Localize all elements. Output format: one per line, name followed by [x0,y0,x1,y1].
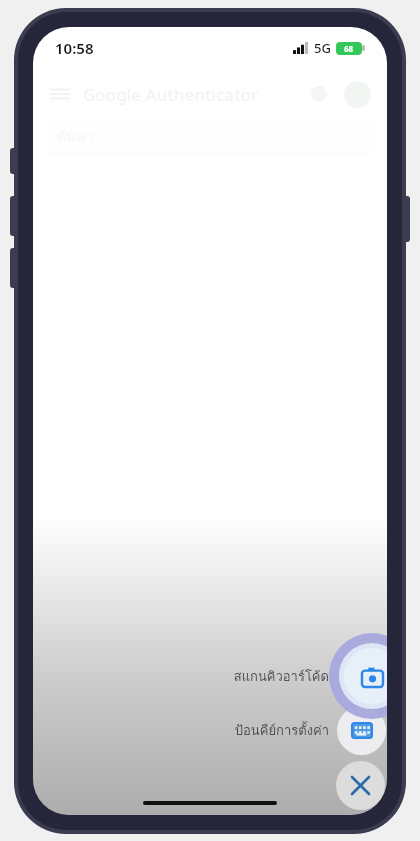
button[interactable]: สแกนคิวอาร์โค้ด [185,633,387,719]
button[interactable]: Menu [49,69,371,119]
staticText: สแกนคิวอาร์โค้ด [233,666,329,687]
staticText: 68 [344,43,354,54]
button[interactable]: ป้อนคีย์การตั้งค่า [203,703,386,757]
other: Cloud sync [308,83,330,105]
staticText: 5G [314,39,331,57]
staticText: 10:58 [55,38,94,58]
button[interactable]: Close [336,761,385,810]
other: Account [344,81,371,108]
staticText: Google Authenticator [83,83,259,106]
other: Menu [49,83,71,105]
staticText: ป้อนคีย์การตั้งค่า [234,720,329,741]
